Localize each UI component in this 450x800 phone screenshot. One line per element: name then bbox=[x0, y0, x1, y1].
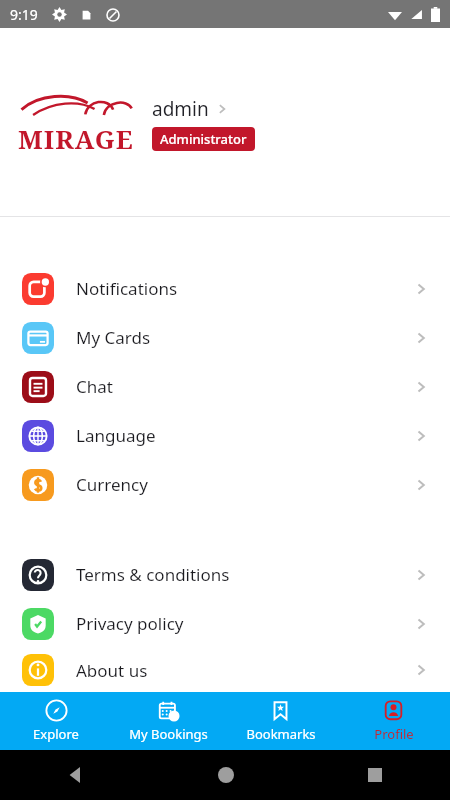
staticText: Profile bbox=[374, 725, 414, 743]
button[interactable]: Language bbox=[0, 411, 450, 460]
staticText: MIRAGE bbox=[18, 121, 134, 156]
staticText: admin bbox=[152, 96, 209, 122]
button[interactable]: My Cards bbox=[0, 313, 450, 362]
button[interactable]: Currency bbox=[0, 460, 450, 509]
staticText: Terms & conditions bbox=[76, 563, 414, 586]
staticText: My Bookings bbox=[129, 725, 208, 743]
staticText: About us bbox=[76, 659, 414, 682]
button[interactable]: My Bookings bbox=[112, 692, 224, 750]
button[interactable]: Profile bbox=[337, 692, 450, 750]
staticText: Currency bbox=[76, 473, 414, 496]
other: Home bbox=[218, 767, 234, 783]
button[interactable]: Privacy policy bbox=[0, 599, 450, 648]
staticText: Administrator bbox=[160, 130, 247, 148]
button[interactable]: Chat bbox=[0, 362, 450, 411]
staticText: Explore bbox=[33, 725, 79, 743]
staticText: Notifications bbox=[76, 277, 414, 300]
button[interactable]: Notifications bbox=[0, 264, 450, 313]
staticText: Bookmarks bbox=[246, 725, 316, 743]
button[interactable]: admin bbox=[150, 92, 257, 155]
staticText: My Cards bbox=[76, 326, 414, 349]
button[interactable]: Terms & conditions bbox=[0, 550, 450, 599]
staticText: Language bbox=[76, 424, 414, 447]
button[interactable]: About us bbox=[0, 648, 450, 692]
staticText: Privacy policy bbox=[76, 612, 414, 635]
button[interactable]: Explore bbox=[0, 692, 112, 750]
staticText: 9:19 bbox=[10, 5, 38, 24]
button[interactable]: Bookmarks bbox=[224, 692, 337, 750]
other: Back bbox=[68, 767, 84, 783]
staticText: Chat bbox=[76, 375, 414, 398]
